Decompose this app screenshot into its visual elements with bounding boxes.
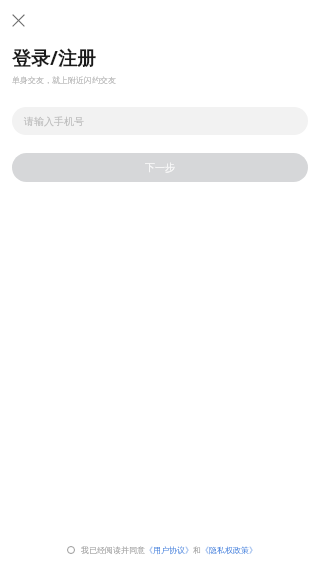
staticText: 下一步 [145, 161, 175, 174]
button[interactable]: 下一步 [12, 153, 308, 182]
staticText: 请输入手机号 [24, 115, 84, 128]
button[interactable]: Agree checkbox [64, 543, 78, 557]
staticText: 单身交友，就上附近闪约交友 [12, 75, 116, 85]
staticText: 登录/注册 [12, 45, 96, 71]
button[interactable]: Close [5, 7, 31, 33]
button[interactable]: 我已经阅读并同意《用户协议》和《隐私权政策》 [81, 545, 257, 555]
button[interactable]: 请输入手机号 [12, 107, 308, 135]
